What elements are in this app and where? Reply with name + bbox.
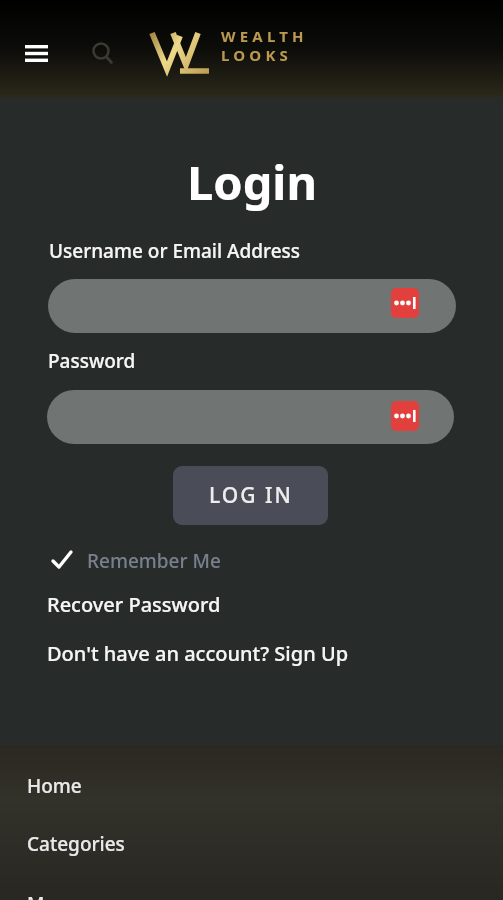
staticText: Remember Me: [87, 548, 221, 574]
staticText: Don't have an account? Sign Up: [47, 640, 349, 667]
button[interactable]: Remember Me: [44, 544, 244, 578]
staticText: Home: [27, 773, 82, 799]
staticText: Password: [48, 348, 136, 374]
button[interactable]: Categories: [27, 831, 227, 863]
button[interactable]: Don't have an account? Sign Up: [47, 640, 349, 667]
button[interactable]: Recover Password: [47, 591, 221, 618]
staticText: LOG IN: [209, 481, 293, 510]
staticText: LOOKS: [221, 45, 293, 65]
staticText: Recover Password: [47, 591, 221, 618]
staticText: Categories: [27, 831, 125, 857]
staticText: WEALTH: [221, 26, 308, 46]
button[interactable]: Home: [27, 773, 227, 805]
staticText: Men: [27, 891, 68, 900]
button[interactable]: LOG IN: [173, 466, 328, 525]
staticText: Username or Email Address: [49, 238, 301, 264]
button[interactable]: [14, 34, 58, 74]
button[interactable]: [48, 279, 456, 333]
button[interactable]: [47, 390, 454, 444]
button[interactable]: [84, 36, 120, 72]
button[interactable]: Men: [27, 891, 227, 900]
staticText: Login: [187, 150, 317, 214]
